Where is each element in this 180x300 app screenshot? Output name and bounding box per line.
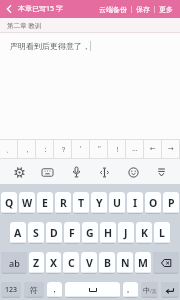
button[interactable]: U: [109, 192, 125, 214]
staticText: ，: [50, 283, 59, 294]
button[interactable]: ←: [144, 139, 162, 159]
staticText: …: [132, 144, 138, 154]
button[interactable]: X: [46, 252, 61, 274]
staticText: T: [78, 196, 85, 210]
button[interactable]: ！: [108, 139, 126, 159]
staticText: ": [98, 144, 101, 154]
button[interactable]: ab: [1, 252, 27, 274]
staticText: ？: [60, 145, 67, 154]
staticText: A: [14, 226, 22, 240]
staticText: 严明看到后更得意了，: [10, 41, 90, 51]
button[interactable]: Y: [91, 192, 107, 214]
button[interactable]: ？: [54, 139, 72, 159]
button[interactable]: E: [37, 192, 53, 214]
button[interactable]: V: [81, 252, 97, 274]
staticText: E: [42, 196, 48, 210]
staticText: ！: [114, 145, 121, 154]
button[interactable]: 更多: [155, 0, 180, 18]
button[interactable]: [9, 162, 29, 182]
button[interactable]: ': [72, 139, 90, 159]
button[interactable]: [66, 162, 86, 182]
staticText: Y: [96, 196, 103, 210]
button[interactable]: 严明看到后更得意了，: [0, 33, 180, 139]
button[interactable]: Z: [29, 252, 44, 274]
button[interactable]: [0, 0, 18, 18]
button[interactable]: C: [63, 252, 79, 274]
staticText: ，: [24, 145, 31, 154]
button[interactable]: D: [46, 222, 62, 244]
button[interactable]: Q: [1, 192, 17, 214]
staticText: 保存: [136, 5, 150, 14]
staticText: V: [86, 256, 93, 270]
button[interactable]: W: [19, 192, 35, 214]
staticText: X: [50, 256, 58, 270]
staticText: 更多: [159, 5, 173, 14]
button[interactable]: B: [99, 252, 115, 274]
button[interactable]: [153, 252, 179, 274]
button[interactable]: ，: [18, 139, 36, 159]
staticText: 第二章 教训: [7, 21, 42, 30]
staticText: S: [33, 226, 39, 240]
staticText: Z: [33, 256, 40, 270]
button[interactable]: 123: [1, 282, 21, 298]
staticText: F: [69, 226, 75, 240]
button[interactable]: [94, 162, 114, 182]
button[interactable]: A: [10, 222, 26, 244]
button[interactable]: 中: [141, 282, 158, 298]
staticText: I: [133, 196, 138, 210]
button[interactable]: [65, 282, 120, 298]
staticText: 中: [143, 286, 150, 295]
staticText: ：: [42, 145, 49, 154]
staticText: ': [80, 144, 82, 154]
button[interactable]: 保存: [132, 0, 154, 18]
button[interactable]: G: [82, 222, 98, 244]
button[interactable]: T: [73, 192, 89, 214]
button[interactable]: →: [162, 139, 180, 159]
button[interactable]: [37, 162, 57, 182]
staticText: H: [104, 226, 113, 240]
staticText: C: [68, 256, 75, 270]
staticText: Q: [5, 196, 14, 210]
button[interactable]: L: [154, 222, 170, 244]
staticText: K: [141, 226, 148, 240]
button[interactable]: I: [127, 192, 143, 214]
staticText: G: [86, 226, 94, 240]
button[interactable]: S: [28, 222, 44, 244]
staticText: N: [121, 256, 130, 270]
button[interactable]: 云端备份: [95, 0, 131, 18]
button[interactable]: 。: [123, 282, 138, 298]
button[interactable]: …: [126, 139, 144, 159]
staticText: R: [60, 196, 67, 210]
staticText: /英: [150, 288, 157, 294]
staticText: 云端备份: [99, 5, 127, 14]
staticText: 符: [30, 285, 38, 295]
staticText: B: [104, 256, 111, 270]
button[interactable]: P: [163, 192, 179, 214]
button[interactable]: [123, 162, 143, 182]
button[interactable]: H: [100, 222, 116, 244]
button[interactable]: J: [118, 222, 134, 244]
button[interactable]: F: [64, 222, 80, 244]
button[interactable]: 第二章 教训: [0, 18, 180, 33]
button[interactable]: M: [135, 252, 151, 274]
staticText: O: [149, 196, 158, 210]
button[interactable]: 、: [0, 139, 18, 159]
button[interactable]: 符: [24, 282, 44, 298]
button[interactable]: ：: [36, 139, 54, 159]
button[interactable]: ": [90, 139, 108, 159]
button[interactable]: R: [55, 192, 71, 214]
staticText: U: [113, 196, 121, 210]
staticText: 123: [5, 285, 18, 295]
button[interactable]: N: [117, 252, 133, 274]
staticText: →: [168, 145, 174, 153]
button[interactable]: O: [145, 192, 161, 214]
button[interactable]: ，: [47, 282, 62, 298]
staticText: L: [159, 226, 165, 240]
button[interactable]: [151, 162, 171, 182]
button[interactable]: K: [136, 222, 152, 244]
staticText: ←: [150, 145, 156, 153]
staticText: M: [138, 256, 148, 270]
button[interactable]: [161, 282, 179, 298]
staticText: P: [168, 196, 175, 210]
staticText: W: [22, 196, 33, 210]
